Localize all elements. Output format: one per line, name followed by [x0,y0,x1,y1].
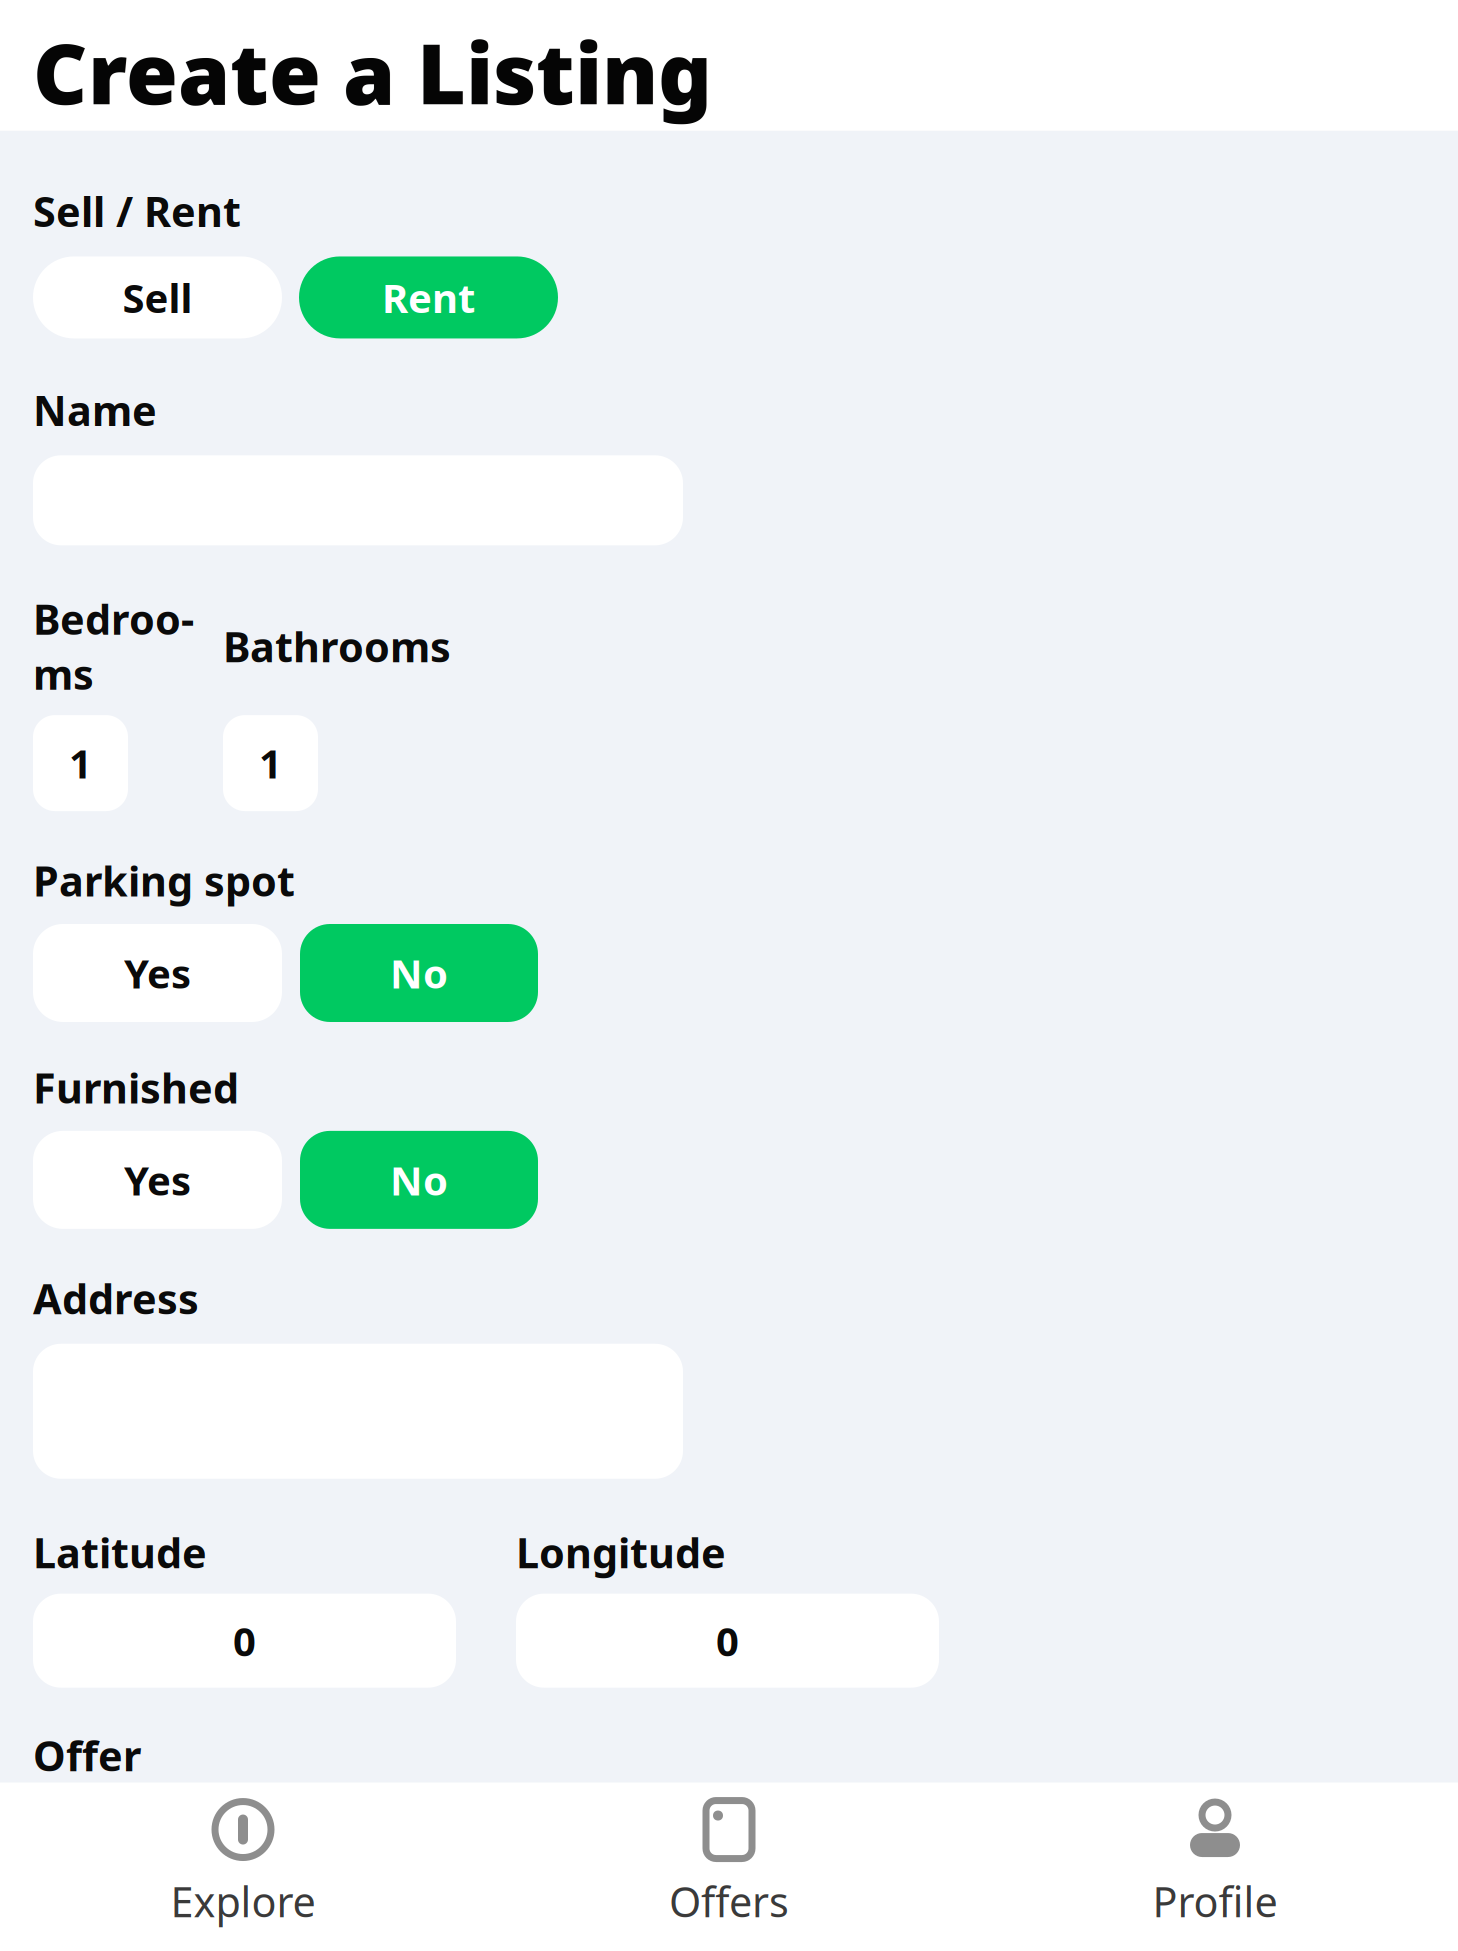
staticText: Longitude [516,1525,726,1580]
staticText: 1 [69,736,92,790]
staticText: Address [33,1271,199,1326]
button[interactable]: 1 [33,715,128,811]
staticText: No [390,946,448,999]
button[interactable]: Offers [486,1782,972,1950]
staticText: Offers [669,1874,789,1929]
button[interactable]: Explore [0,1782,486,1950]
staticText: Bedrooms [33,591,194,701]
button[interactable]: Yes [33,1131,282,1229]
button[interactable]: Profile [972,1782,1458,1950]
button[interactable]: Sell [33,256,282,338]
staticText: Sell / Rent [33,183,241,238]
staticText: Bathrooms [223,619,451,674]
staticText: Yes [124,946,191,999]
staticText: Profile [1152,1874,1277,1929]
staticText: Furnished [33,1060,239,1115]
staticText: Offer [33,1728,141,1783]
staticText: Create a Listing [33,16,712,127]
staticText: Rent [382,271,475,324]
button[interactable]: 1 [223,715,318,811]
staticText: Parking spot [33,853,295,908]
button[interactable]: 0 [516,1594,939,1688]
button[interactable]: No [300,924,538,1022]
button[interactable]: 0 [33,1594,456,1688]
staticText: 0 [716,1614,739,1667]
staticText: 0 [233,1614,256,1667]
button[interactable]: Yes [33,924,282,1022]
staticText: Sell [122,271,192,324]
button[interactable]: Rent [299,256,558,338]
button[interactable]: No [300,1131,538,1229]
staticText: No [390,1153,448,1206]
staticText: 1 [259,736,282,790]
staticText: Explore [170,1874,315,1929]
staticText: Yes [124,1153,191,1206]
staticText: Name [33,382,157,437]
staticText: Latitude [33,1525,207,1580]
